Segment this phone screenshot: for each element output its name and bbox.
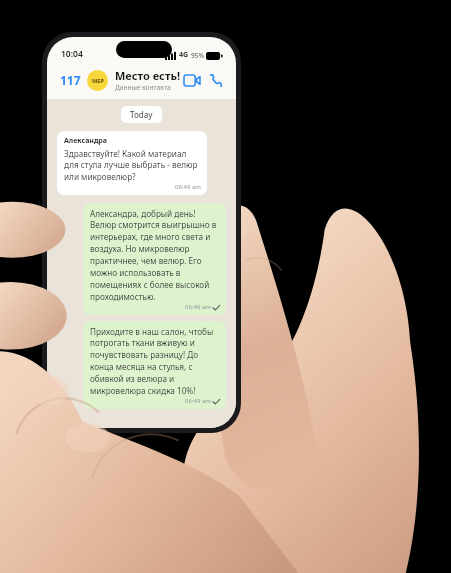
- button[interactable]: Video call: [181, 69, 203, 91]
- button[interactable]: Call: [204, 69, 226, 91]
- staticText: 95%: [191, 51, 204, 60]
- staticText: Александра: [64, 136, 107, 146]
- staticText: Today: [130, 109, 153, 120]
- staticText: Здравствуйте! Какой материал для стула л…: [64, 148, 201, 183]
- staticText: Приходите в наш салон, чтобы потрогать т…: [90, 326, 220, 397]
- staticText: 06:49 am: [175, 183, 201, 191]
- staticText: 06:49 am: [185, 303, 211, 311]
- staticText: Александра, добрый день! Велюр смотрится…: [90, 208, 220, 303]
- staticText: 4G: [179, 50, 189, 60]
- button[interactable]: Александра: [57, 131, 207, 195]
- button[interactable]: Today: [121, 106, 162, 123]
- button[interactable]: Приходите в наш салон, чтобы потрогать т…: [83, 321, 226, 409]
- button[interactable]: МЕР: [87, 70, 108, 91]
- staticText: Место есть!: [115, 68, 181, 83]
- staticText: Данные контакта: [115, 83, 171, 92]
- button[interactable]: Александра, добрый день! Велюр смотрится…: [83, 203, 226, 315]
- staticText: 06:49 am: [185, 397, 211, 405]
- staticText: МЕР: [92, 77, 104, 84]
- staticText: 117: [60, 72, 81, 88]
- staticText: 10:04: [61, 48, 83, 60]
